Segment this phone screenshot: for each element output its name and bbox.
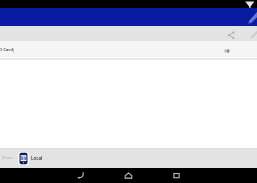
button[interactable]: Local: [18, 149, 43, 167]
button[interactable]: Recents: [171, 170, 182, 181]
staticText: D Card: [0, 47, 13, 53]
button[interactable]: Home: [123, 170, 134, 181]
button[interactable]: Edit name: [248, 27, 257, 40]
button[interactable]: D Card: [0, 41, 257, 57]
staticText: Local: [31, 155, 43, 161]
staticText: Share: [2, 155, 14, 161]
button[interactable]: Toggle view: [223, 47, 231, 55]
button[interactable]: Share: [1, 149, 15, 167]
button[interactable]: Share: [225, 29, 237, 41]
button[interactable]: Back: [75, 170, 86, 181]
button[interactable]: Edit: [246, 10, 257, 25]
